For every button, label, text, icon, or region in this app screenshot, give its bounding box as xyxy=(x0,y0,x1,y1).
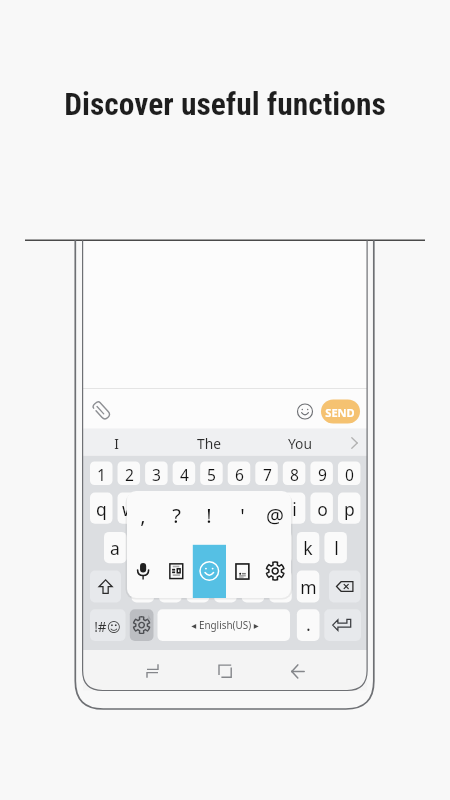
staticText: 6 xyxy=(235,464,244,485)
staticText: u xyxy=(262,497,273,521)
staticText: g xyxy=(220,536,231,560)
staticText: !#☺ xyxy=(94,617,121,636)
staticText: t xyxy=(208,497,215,521)
staticText: i xyxy=(292,497,297,521)
button[interactable]: Back xyxy=(286,659,310,683)
staticText: , xyxy=(140,502,146,529)
button[interactable]: Attach file xyxy=(90,398,114,423)
staticText: 0 xyxy=(345,464,354,485)
staticText: Discover useful functions xyxy=(0,86,450,123)
staticText: b xyxy=(248,575,259,599)
staticText: p xyxy=(344,497,355,521)
staticText: q xyxy=(96,497,107,521)
staticText: 9 xyxy=(318,464,327,485)
button[interactable]: Recent apps xyxy=(140,659,164,683)
button[interactable]: Emoji xyxy=(293,400,317,424)
staticText: I xyxy=(114,434,119,453)
staticText: 5 xyxy=(207,464,216,485)
staticText: @ xyxy=(266,502,284,529)
staticText: The xyxy=(197,434,221,453)
staticText: 4 xyxy=(180,464,189,485)
button[interactable]: Home xyxy=(213,659,237,683)
staticText: ! xyxy=(206,502,212,529)
staticText: . xyxy=(306,612,311,637)
staticText: z xyxy=(139,575,148,599)
staticText: 2 xyxy=(125,464,134,485)
staticText: 1 xyxy=(97,464,106,485)
staticText: 8 xyxy=(290,464,299,485)
staticText: 7 xyxy=(263,464,272,485)
staticText: x xyxy=(165,575,175,599)
staticText: ◂ English(US) ▸ xyxy=(191,618,259,631)
staticText: c xyxy=(194,575,203,599)
staticText: l xyxy=(334,536,339,560)
staticText: ? xyxy=(172,502,181,529)
button[interactable]: Send xyxy=(321,400,360,424)
staticText: o xyxy=(317,497,328,521)
staticText: f xyxy=(195,536,202,560)
staticText: a xyxy=(110,536,120,560)
staticText: v xyxy=(221,575,230,599)
staticText: You xyxy=(288,434,312,453)
staticText: ' xyxy=(240,502,245,529)
staticText: n xyxy=(276,575,287,599)
staticText: m xyxy=(300,575,317,599)
staticText: k xyxy=(303,536,313,560)
staticText: r xyxy=(180,497,188,521)
staticText: 3 xyxy=(152,464,161,485)
staticText: w xyxy=(122,497,136,521)
staticText: y xyxy=(235,497,244,521)
staticText: SEND xyxy=(325,405,355,420)
